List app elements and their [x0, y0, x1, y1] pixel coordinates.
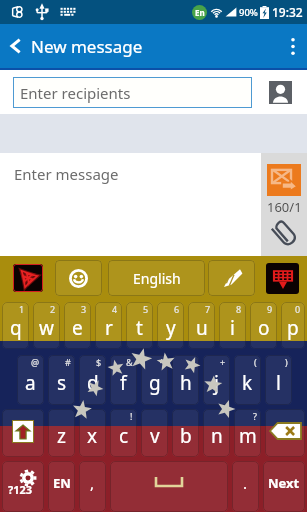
staticText: 1: [19, 303, 25, 315]
button[interactable]: .: [232, 461, 259, 512]
staticText: New message: [31, 35, 143, 58]
button[interactable]: n: [203, 409, 230, 457]
button[interactable]: 5: [126, 302, 153, 349]
staticText: m: [239, 423, 257, 449]
staticText: 160/1: [267, 198, 302, 216]
staticText: u: [196, 315, 208, 341]
staticText: 7: [205, 303, 211, 315]
staticText: k: [242, 370, 253, 396]
staticText: o: [258, 315, 270, 341]
button[interactable]: Symbols: [2, 461, 44, 512]
staticText: 6: [174, 303, 180, 315]
staticText: r: [105, 315, 113, 341]
staticText: 5: [143, 303, 149, 315]
staticText: -: [192, 356, 195, 368]
staticText: English: [133, 269, 181, 288]
button[interactable]: 4: [95, 302, 122, 349]
staticText: y: [166, 315, 176, 341]
staticText: .: [243, 473, 248, 493]
button[interactable]: (: [234, 355, 261, 405]
staticText: &: [126, 356, 133, 368]
staticText: b: [180, 423, 192, 449]
staticText: 8: [236, 303, 242, 315]
button[interactable]: Enter recipients: [13, 77, 252, 108]
button[interactable]: v: [141, 409, 168, 457]
button[interactable]: 3: [64, 302, 91, 349]
button[interactable]: EN: [48, 461, 75, 512]
button[interactable]: *: [141, 355, 168, 405]
staticText: i: [230, 315, 235, 341]
button[interactable]: &: [110, 355, 137, 405]
button[interactable]: ): [265, 355, 292, 405]
button[interactable]: Space: [110, 461, 228, 512]
button[interactable]: Shift: [2, 409, 44, 457]
staticText: g: [149, 370, 161, 396]
staticText: EN: [53, 474, 71, 492]
button[interactable]: x: [79, 409, 106, 457]
button[interactable]: English: [108, 260, 205, 296]
button[interactable]: Send message: [267, 164, 301, 196]
button[interactable]: More options: [279, 24, 307, 68]
button[interactable]: Next: [263, 461, 305, 512]
button[interactable]: !: [110, 409, 137, 457]
button[interactable]: Back: [0, 24, 30, 68]
staticText: Enter message: [14, 164, 119, 184]
staticText: 9: [267, 303, 273, 315]
button[interactable]: Mute: [13, 264, 43, 292]
button[interactable]: Backspace: [265, 409, 305, 457]
button[interactable]: ?: [234, 409, 261, 457]
staticText: l: [276, 370, 281, 396]
button[interactable]: -: [172, 355, 199, 405]
staticText: d: [87, 370, 99, 396]
staticText: +: [220, 356, 226, 368]
button[interactable]: ,: [79, 461, 106, 512]
button[interactable]: 6: [157, 302, 184, 349]
button[interactable]: 1: [2, 302, 29, 349]
staticText: Next: [268, 474, 300, 492]
button[interactable]: 8: [219, 302, 246, 349]
button[interactable]: 9: [250, 302, 277, 349]
button[interactable]: #: [48, 355, 75, 405]
button[interactable]: 7: [188, 302, 215, 349]
button[interactable]: z: [48, 409, 75, 457]
staticText: 4: [112, 303, 118, 315]
staticText: Enter recipients: [20, 83, 131, 103]
staticText: ,: [90, 473, 95, 493]
staticText: e: [72, 315, 83, 341]
button[interactable]: Add contact: [269, 81, 292, 104]
button[interactable]: $: [79, 355, 106, 405]
staticText: q: [10, 315, 22, 341]
button[interactable]: Attach file: [271, 220, 298, 247]
staticText: n: [211, 423, 223, 449]
button[interactable]: 2: [33, 302, 60, 349]
staticText: a: [25, 370, 36, 396]
staticText: 2: [50, 303, 56, 315]
staticText: v: [150, 423, 160, 449]
staticText: s: [57, 370, 67, 396]
button[interactable]: @: [17, 355, 44, 405]
staticText: j: [214, 370, 219, 396]
staticText: En: [195, 7, 205, 18]
staticText: 3: [81, 303, 87, 315]
staticText: @: [31, 356, 40, 368]
button[interactable]: Hide keyboard: [266, 263, 299, 294]
staticText: (: [254, 356, 257, 368]
staticText: 0: [295, 303, 301, 315]
button[interactable]: +: [203, 355, 230, 405]
staticText: 19:32: [272, 4, 303, 20]
button[interactable]: Emoji: [55, 260, 102, 296]
staticText: 90%: [239, 6, 258, 19]
staticText: z: [57, 423, 66, 449]
staticText: h: [180, 370, 192, 396]
button[interactable]: Handwriting: [208, 260, 255, 296]
staticText: *: [159, 356, 164, 368]
button[interactable]: 0: [281, 302, 305, 349]
staticText: x: [87, 423, 98, 449]
staticText: p: [287, 315, 299, 341]
staticText: $: [96, 356, 102, 368]
button[interactable]: b: [172, 409, 199, 457]
staticText: f: [120, 370, 127, 396]
staticText: #: [65, 356, 71, 368]
staticText: !: [130, 410, 133, 422]
staticText: t: [136, 315, 143, 341]
